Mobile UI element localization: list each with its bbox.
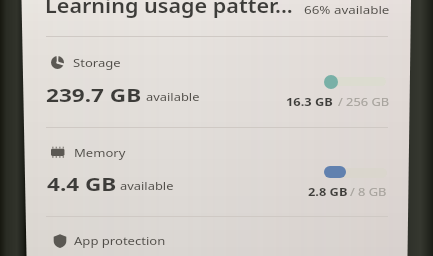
staticText: Learning usage patter...	[45, 0, 294, 19]
staticText: / 8 GB	[350, 185, 387, 200]
button[interactable]	[40, 220, 388, 256]
other: Storage	[51, 56, 64, 69]
other: App protection	[53, 234, 67, 248]
staticText: available	[120, 179, 174, 194]
staticText: App protection	[74, 233, 166, 248]
button[interactable]	[40, 130, 388, 216]
staticText: Memory	[74, 145, 126, 160]
staticText: available	[146, 90, 200, 105]
staticText: 2.8 GB	[308, 185, 348, 200]
button[interactable]	[40, 0, 388, 34]
staticText: / 256 GB	[338, 95, 390, 110]
staticText: Storage	[73, 55, 121, 70]
staticText: 4.4 GB	[47, 172, 116, 197]
staticText: 16.3 GB	[286, 95, 333, 110]
staticText: 239.7 GB	[46, 83, 141, 108]
staticText: 66% available	[304, 2, 390, 18]
button[interactable]	[40, 40, 388, 126]
other: Memory	[51, 145, 65, 159]
